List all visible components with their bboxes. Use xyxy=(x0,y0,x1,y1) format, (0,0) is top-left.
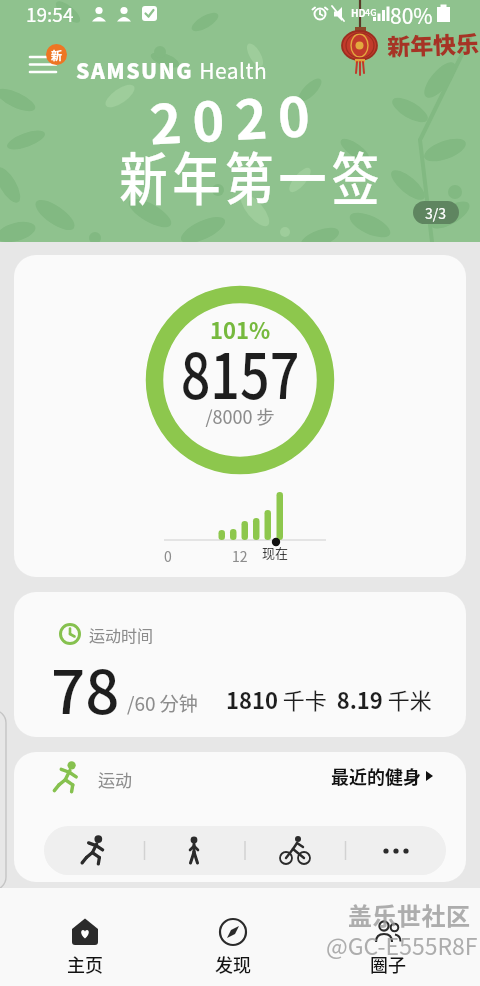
staticText: 发现 xyxy=(215,951,251,977)
staticText: @GC-E555R8F xyxy=(326,928,478,961)
staticText: 现在 xyxy=(262,543,289,562)
staticText: 主页 xyxy=(67,951,103,977)
button[interactable] xyxy=(144,826,244,875)
staticText: 最近的健身 xyxy=(331,763,421,789)
button[interactable]: 圈子 xyxy=(320,888,480,986)
staticText: 0 xyxy=(164,546,172,566)
staticText: 101% xyxy=(14,313,466,345)
staticText: /60 分钟 xyxy=(127,689,198,717)
button[interactable] xyxy=(22,48,66,84)
button[interactable]: 运动时间 xyxy=(14,592,466,737)
staticText: 新年第一签 xyxy=(12,134,480,216)
staticText: 2020 xyxy=(0,64,477,167)
staticText: 80% xyxy=(390,0,433,30)
staticText: 12 xyxy=(232,546,248,566)
staticText: 运动时间 xyxy=(89,623,154,646)
staticText: 8157 xyxy=(50,327,430,417)
staticText: 运动 xyxy=(98,767,132,792)
button[interactable] xyxy=(244,826,345,875)
staticText: /8000 步 xyxy=(14,403,466,429)
button[interactable]: 发现 xyxy=(160,888,320,986)
button[interactable] xyxy=(345,826,446,875)
staticText: 3/3 xyxy=(425,203,447,223)
staticText: SAMSUNG xyxy=(76,55,194,85)
button[interactable] xyxy=(44,826,144,875)
button[interactable]: 主页 xyxy=(0,888,160,986)
staticText: 圈子 xyxy=(370,951,406,977)
staticText: 盖乐世社区 xyxy=(348,897,471,932)
staticText: 19:54 xyxy=(26,0,74,28)
staticText: 78 xyxy=(51,644,120,731)
staticText: 新年快乐 xyxy=(386,25,480,62)
staticText: Health xyxy=(194,55,268,85)
button[interactable]: 最近的健身 xyxy=(294,761,437,791)
staticText: 新 xyxy=(51,47,62,63)
button[interactable]: 101% xyxy=(14,255,466,577)
staticText: 1810 千卡 8.19 千米 xyxy=(226,683,432,715)
staticText: HD xyxy=(351,5,366,19)
staticText: 4G xyxy=(365,6,377,19)
